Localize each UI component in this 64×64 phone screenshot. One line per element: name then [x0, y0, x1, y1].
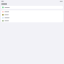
button[interactable] — [1, 16, 63, 19]
button[interactable] — [1, 13, 63, 16]
button[interactable] — [1, 19, 63, 22]
button[interactable] — [1, 6, 63, 9]
button[interactable] — [1, 10, 63, 13]
